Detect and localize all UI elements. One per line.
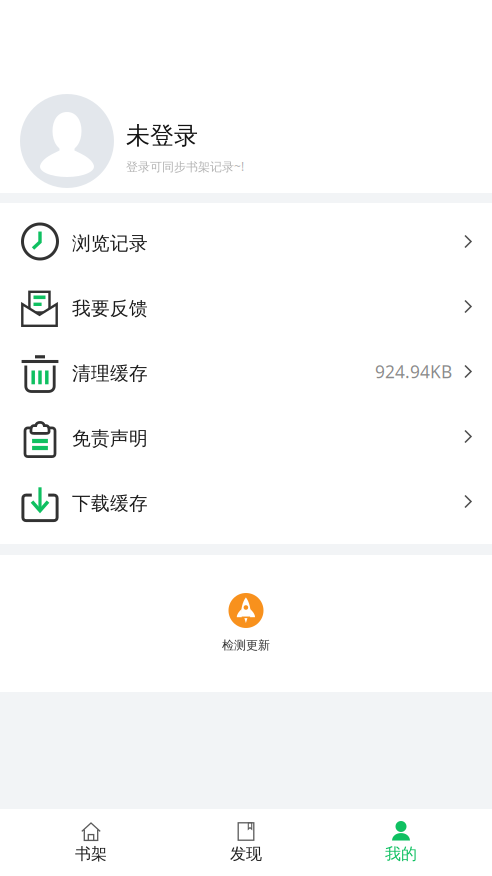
button[interactable]: 浏览记录	[0, 209, 492, 274]
staticText: 未登录	[126, 121, 198, 150]
staticText: 清理缓存	[72, 362, 148, 385]
button[interactable]: 发现	[168, 809, 323, 876]
staticText: 924.94KB	[375, 360, 452, 383]
button[interactable]: 免责声明	[0, 404, 492, 469]
staticText: 免责声明	[72, 427, 148, 450]
staticText: 浏览记录	[72, 232, 148, 255]
staticText: 我的	[385, 844, 417, 864]
staticText: 我要反馈	[72, 297, 148, 320]
staticText: 下载缓存	[72, 492, 148, 515]
staticText: 登录可同步书架记录~!	[126, 158, 244, 174]
button[interactable]: 检测更新	[0, 555, 492, 692]
button[interactable]: 我要反馈	[0, 274, 492, 339]
staticText: 发现	[230, 844, 262, 864]
button[interactable]: 下载缓存	[0, 469, 492, 534]
staticText: 书架	[75, 844, 107, 864]
button[interactable]: 书架	[13, 809, 168, 876]
staticText: 检测更新	[222, 638, 270, 653]
button[interactable]: 未登录，登录可同步书架记录	[0, 0, 492, 193]
button[interactable]: 清理缓存	[0, 339, 492, 404]
button[interactable]: 我的	[323, 809, 478, 876]
